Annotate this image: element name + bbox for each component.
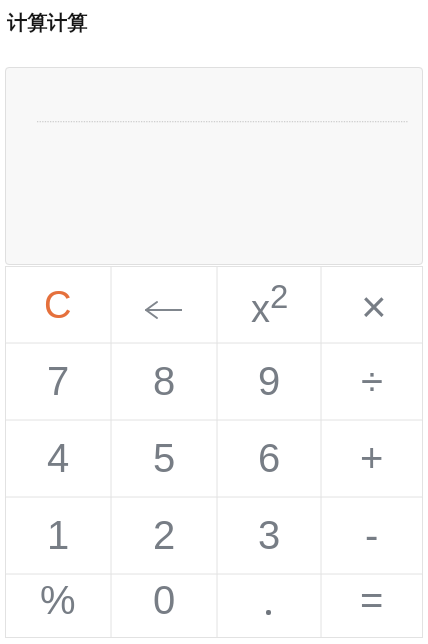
button[interactable]: C	[5, 266, 111, 343]
button[interactable]: -	[321, 497, 423, 574]
button[interactable]: 5	[111, 420, 217, 497]
button[interactable]: 1	[5, 497, 111, 574]
staticText: -	[365, 513, 379, 558]
staticText: 3	[258, 513, 281, 558]
staticText: %	[40, 578, 76, 623]
button[interactable]: 3	[217, 497, 321, 574]
button[interactable]: 0	[111, 574, 217, 638]
staticText: 5	[153, 436, 176, 481]
button[interactable]: 2	[111, 497, 217, 574]
button[interactable]: 9	[217, 343, 321, 420]
button[interactable]: 6	[217, 420, 321, 497]
button[interactable]	[217, 574, 321, 638]
staticText: ×	[361, 282, 387, 331]
staticText: 7	[47, 359, 70, 404]
button[interactable]: +	[321, 420, 423, 497]
button[interactable]: 7	[5, 343, 111, 420]
staticText: 2	[153, 513, 176, 558]
button[interactable]: 4	[5, 420, 111, 497]
staticText: 0	[153, 578, 176, 623]
button[interactable]: ÷	[321, 343, 423, 420]
staticText: 1	[47, 513, 70, 558]
staticText: x	[251, 288, 270, 330]
staticText: C	[44, 284, 72, 326]
staticText: =	[360, 578, 384, 623]
button[interactable]	[5, 67, 423, 265]
button[interactable]: =	[321, 574, 423, 638]
staticText: 9	[258, 359, 281, 404]
button[interactable]: %	[5, 574, 111, 638]
button[interactable]	[111, 266, 217, 343]
staticText: ÷	[361, 359, 383, 404]
staticText: 8	[153, 359, 176, 404]
button[interactable]: x	[217, 266, 321, 343]
staticText: 2	[270, 278, 289, 315]
staticText: 6	[258, 436, 281, 481]
staticText: 4	[47, 436, 70, 481]
staticText: +	[360, 436, 384, 481]
staticText: 计算计算	[7, 11, 87, 36]
button[interactable]: ×	[321, 266, 423, 343]
button[interactable]: 8	[111, 343, 217, 420]
